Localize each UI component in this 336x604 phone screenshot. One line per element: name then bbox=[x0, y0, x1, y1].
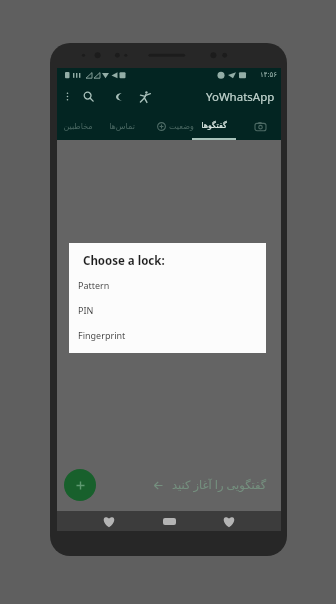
button[interactable]: Home bbox=[159, 511, 179, 531]
button[interactable]: Pattern bbox=[69, 276, 266, 294]
staticText: گفتگویی را آغاز کنید bbox=[172, 477, 267, 493]
button[interactable]: گفتگوها bbox=[192, 112, 236, 140]
staticText: Fingerprint bbox=[78, 329, 126, 341]
button[interactable]: Back bbox=[99, 511, 119, 531]
button[interactable]: Status bbox=[134, 81, 155, 112]
button[interactable]: Search bbox=[78, 81, 98, 112]
staticText: Pattern bbox=[78, 279, 110, 291]
staticText: وضعیت bbox=[169, 122, 194, 131]
staticText: YoWhatsApp bbox=[206, 89, 275, 105]
button[interactable]: تماس‌ها bbox=[102, 112, 142, 140]
button[interactable]: PIN bbox=[69, 301, 266, 319]
staticText: ۱۴:۵۶ bbox=[260, 70, 277, 80]
button[interactable]: مخاطبین bbox=[57, 112, 99, 140]
button[interactable]: وضعیت bbox=[151, 112, 199, 140]
button[interactable]: Dark mode bbox=[107, 81, 128, 112]
button[interactable]: Fingerprint bbox=[69, 326, 266, 344]
staticText: گفتگوها bbox=[201, 121, 227, 130]
staticText: Choose a lock: bbox=[83, 253, 165, 269]
button[interactable]: Camera bbox=[247, 112, 273, 140]
button[interactable]: More options bbox=[57, 81, 77, 112]
staticText: PIN bbox=[78, 304, 94, 316]
button[interactable]: New chat bbox=[64, 469, 96, 501]
staticText: تماس‌ها bbox=[109, 122, 135, 131]
staticText: مخاطبین bbox=[63, 122, 93, 131]
button[interactable]: Recents bbox=[219, 511, 239, 531]
